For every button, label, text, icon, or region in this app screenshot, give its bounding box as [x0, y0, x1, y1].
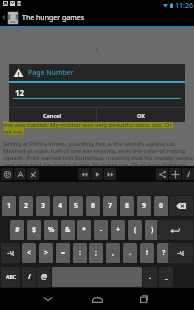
button[interactable]: Fast forward	[104, 168, 116, 180]
button[interactable]: Backspace	[169, 196, 193, 216]
button[interactable]: 4	[53, 196, 67, 216]
staticText: &	[65, 225, 71, 235]
button[interactable]: 8	[120, 196, 134, 216]
staticText: 3	[41, 201, 46, 211]
button[interactable]: )	[145, 220, 159, 240]
staticText: she was named. My mother was very beauti…	[3, 121, 173, 128]
staticText: %	[48, 225, 55, 235]
staticText: 12	[15, 87, 25, 98]
staticText: .	[129, 248, 131, 258]
button[interactable]: ABC	[1, 267, 20, 287]
button[interactable]: (	[128, 220, 142, 240]
button[interactable]: <	[22, 243, 36, 263]
button[interactable]: 7	[103, 196, 117, 216]
staticText: /	[28, 272, 31, 282]
button[interactable]: 9	[137, 196, 151, 216]
staticText: <	[27, 248, 32, 258]
button[interactable]: Book cover	[8, 12, 18, 24]
staticText: ABC	[6, 274, 16, 281]
button[interactable]: Effects	[27, 168, 39, 180]
button[interactable]: +	[111, 220, 125, 240]
button[interactable]: 1	[2, 196, 16, 216]
staticText: _	[165, 272, 168, 282]
staticText: ,	[112, 248, 114, 258]
staticText: ~\{	[177, 250, 184, 257]
staticText: 9	[142, 201, 147, 211]
button[interactable]: 6	[86, 196, 100, 216]
staticText: 11:26	[175, 1, 193, 10]
staticText: #	[15, 225, 20, 235]
button[interactable]: Recent apps	[136, 291, 152, 307]
staticText: 2	[24, 201, 29, 211]
staticText: tell me.	[3, 128, 24, 135]
staticText: $	[32, 225, 37, 235]
staticText: *	[82, 225, 86, 235]
staticText: :	[79, 248, 81, 258]
button[interactable]: Play	[91, 168, 103, 180]
button[interactable]: .	[123, 243, 137, 263]
button[interactable]: ;	[89, 243, 103, 263]
button[interactable]: >	[39, 243, 53, 263]
button[interactable]: %	[44, 220, 58, 240]
staticText: ~\{	[7, 250, 14, 257]
staticText: OK	[137, 112, 146, 119]
button[interactable]: 2	[19, 196, 33, 216]
button[interactable]: ~\{	[168, 243, 193, 263]
button[interactable]: @	[37, 267, 51, 287]
staticText: 8	[125, 201, 130, 211]
button[interactable]: ?	[157, 243, 171, 263]
button[interactable]: Move	[169, 168, 181, 180]
staticText: Page Number	[28, 68, 74, 78]
staticText: 0	[159, 201, 164, 211]
staticText: +	[116, 225, 121, 235]
button[interactable]: !	[140, 243, 154, 263]
button[interactable]: Cancel	[9, 108, 96, 122]
staticText: =	[61, 248, 66, 258]
button[interactable]: OK	[97, 108, 185, 122]
button[interactable]: :	[73, 243, 87, 263]
button[interactable]: 0	[154, 196, 168, 216]
staticText: @	[41, 272, 48, 282]
staticText: >	[44, 248, 49, 258]
button[interactable]: /	[22, 267, 36, 287]
staticText: !	[146, 248, 148, 258]
button[interactable]: Font size	[14, 168, 26, 180]
button[interactable]: $	[27, 220, 41, 240]
staticText: Cancel	[43, 112, 62, 119]
button[interactable]: #	[10, 220, 24, 240]
button[interactable]: .	[143, 267, 157, 287]
button[interactable]: Home	[89, 291, 105, 307]
button[interactable]: ,	[106, 243, 120, 263]
button[interactable]: Share	[156, 168, 168, 180]
staticText: ;	[95, 248, 97, 258]
button[interactable]: 3	[36, 196, 50, 216]
button[interactable]: &	[61, 220, 75, 240]
staticText: 5	[74, 201, 79, 211]
button[interactable]: Back	[0, 9, 7, 26]
staticText: ?	[162, 248, 166, 258]
button[interactable]: =	[56, 243, 70, 263]
button[interactable]: Hide keyboard	[40, 291, 56, 307]
staticText: -	[100, 225, 103, 235]
button[interactable]: Enter	[157, 220, 193, 240]
staticText: )	[151, 225, 154, 235]
staticText: Sitting at Prim's knees, guarding her, i…	[3, 140, 194, 169]
button[interactable]: ~\{	[1, 243, 20, 263]
button[interactable]: *	[77, 220, 91, 240]
staticText: 4	[58, 201, 63, 211]
staticText: (	[134, 225, 137, 235]
button[interactable]: Theme	[1, 168, 13, 180]
button[interactable]: _	[159, 267, 173, 287]
staticText: 7	[108, 201, 113, 211]
button[interactable]: Rewind	[78, 168, 90, 180]
staticText: .	[149, 272, 151, 282]
button[interactable]: 5	[69, 196, 83, 216]
staticText: The hunger games	[22, 13, 85, 23]
staticText: 1	[7, 201, 12, 211]
staticText: 6	[91, 201, 96, 211]
button[interactable]: -	[94, 220, 108, 240]
button[interactable]: Italic	[182, 168, 194, 180]
